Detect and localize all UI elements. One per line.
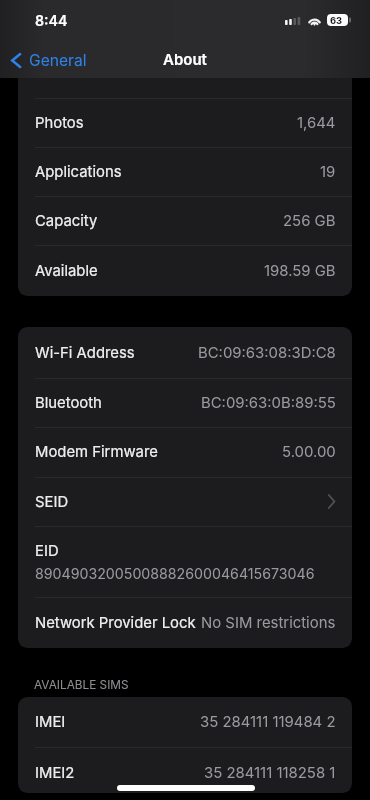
button[interactable]: EID <box>18 526 352 597</box>
button[interactable]: Available <box>18 245 352 296</box>
staticText: BC:09:63:08:3D:C8 <box>198 344 336 362</box>
staticText: 256 GB <box>283 212 336 230</box>
staticText: 63 <box>330 15 343 26</box>
staticText: Photos <box>35 114 84 132</box>
staticText: 5.00.00 <box>282 443 336 461</box>
button[interactable]: Modem Firmware <box>18 427 352 477</box>
staticText: IMEI <box>35 713 66 731</box>
staticText: 19 <box>320 163 336 181</box>
other: Battery 63 percent <box>327 14 351 26</box>
staticText: Bluetooth <box>35 394 102 412</box>
staticText: 35 284111 119484 2 <box>200 713 336 731</box>
staticText: IMEI2 <box>35 764 75 782</box>
staticText: Capacity <box>35 212 98 230</box>
other: Wi-Fi <box>308 16 321 26</box>
staticText: 35 284111 118258 1 <box>204 764 336 782</box>
button[interactable]: General <box>0 45 97 75</box>
staticText: Available <box>35 262 98 280</box>
button[interactable]: Photos <box>18 98 352 147</box>
button[interactable]: Applications <box>18 147 352 196</box>
staticText: Network Provider Lock <box>35 614 196 632</box>
staticText: BC:09:63:0B:89:55 <box>201 394 336 412</box>
staticText: 8:44 <box>35 12 68 29</box>
button[interactable]: Capacity <box>18 196 352 245</box>
staticText: No SIM restrictions <box>201 614 336 632</box>
button[interactable]: Bluetooth <box>18 378 352 427</box>
staticText: General <box>29 51 87 70</box>
staticText: 89049032005008882600046415673046 <box>35 565 315 582</box>
staticText: About <box>163 50 207 68</box>
button[interactable]: SEID <box>18 477 352 526</box>
staticText: EID <box>35 542 59 560</box>
staticText: Modem Firmware <box>35 443 158 461</box>
staticText: Applications <box>35 163 122 181</box>
staticText: AVAILABLE SIMS <box>34 678 129 692</box>
staticText: SEID <box>35 493 69 511</box>
button[interactable]: IMEI2 <box>18 747 352 793</box>
other: Cellular signal <box>285 17 300 25</box>
button[interactable]: Wi-Fi Address <box>18 327 352 378</box>
button[interactable]: IMEI <box>18 697 352 747</box>
staticText: Wi-Fi Address <box>35 344 135 362</box>
button[interactable]: Network Provider Lock <box>18 597 352 648</box>
staticText: 1,644 <box>297 114 336 132</box>
staticText: 198.59 GB <box>264 262 336 280</box>
